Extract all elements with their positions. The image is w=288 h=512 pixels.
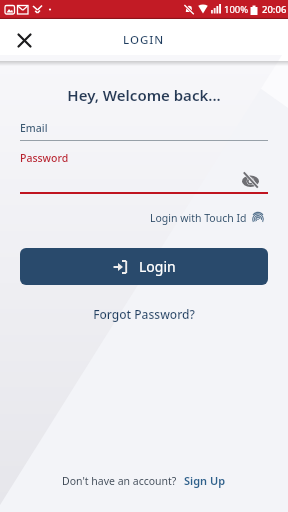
staticText: LOGIN [123,32,165,48]
staticText: Login with Touch Id [150,211,247,225]
staticText: Password [20,151,69,165]
staticText: Email [20,121,48,135]
staticText: Hey, Welcome back... [0,85,288,105]
button[interactable]: Login with Touch Id [0,211,264,225]
button[interactable]: Sign Up [184,473,226,488]
button[interactable] [10,26,38,54]
staticText: Login [139,257,176,276]
button[interactable]: Forgot Password? [0,306,288,322]
button[interactable]: Login [20,248,268,285]
button[interactable] [242,172,260,188]
staticText: 20:06 [262,3,287,16]
staticText: 100% [224,3,249,16]
staticText: Don't have an account? [62,474,177,488]
